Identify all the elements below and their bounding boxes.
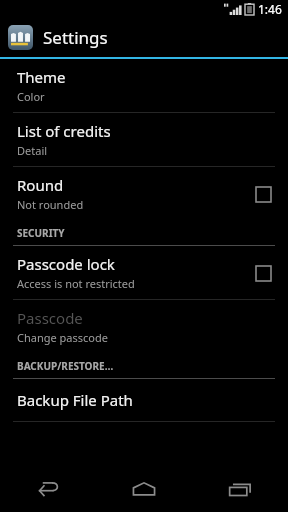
button[interactable]: Passcode lock: [0, 246, 288, 299]
staticText: 1:46: [258, 1, 282, 17]
staticText: Access is not restricted: [17, 276, 135, 291]
button[interactable]: Round: [0, 167, 288, 220]
other: Toggle Round: [252, 183, 274, 205]
staticText: Color: [17, 89, 45, 104]
staticText: Detail: [17, 143, 48, 158]
button[interactable]: Backup File Path: [0, 379, 288, 421]
button[interactable]: Back: [0, 466, 96, 512]
staticText: Settings: [43, 26, 108, 49]
staticText: Theme: [17, 67, 66, 87]
button[interactable]: Settings: [0, 18, 288, 57]
staticText: BACKUP/RESTORE…: [17, 359, 114, 373]
other: Toggle Passcode lock: [252, 262, 274, 284]
button[interactable]: Passcode: [0, 300, 288, 353]
button[interactable]: List of credits: [0, 113, 288, 166]
button[interactable]: Recent apps: [192, 466, 288, 512]
staticText: Not rounded: [17, 197, 84, 212]
staticText: Passcode: [17, 308, 83, 328]
staticText: List of credits: [17, 121, 111, 141]
staticText: Passcode lock: [17, 254, 115, 274]
button[interactable]: Home: [96, 466, 192, 512]
staticText: Change passcode: [17, 330, 108, 345]
staticText: Backup File Path: [17, 390, 133, 410]
button[interactable]: Theme: [0, 59, 288, 112]
staticText: SECURITY: [17, 226, 65, 240]
staticText: Round: [17, 175, 64, 195]
